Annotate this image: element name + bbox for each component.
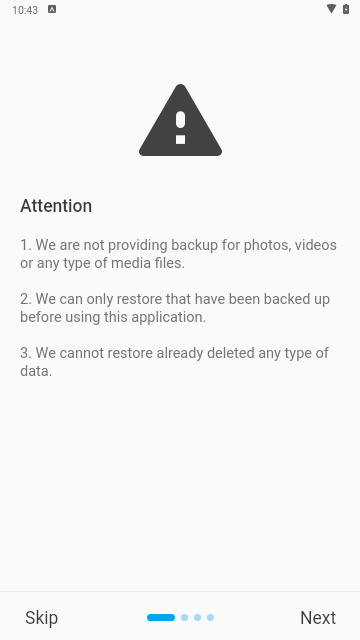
button[interactable]: Skip	[0, 597, 84, 640]
staticText: Next	[300, 608, 337, 629]
staticText: 3. We cannot restore already deleted any…	[20, 345, 340, 380]
staticText: Skip	[25, 608, 59, 629]
staticText: 1. We are not providing backup for photo…	[20, 237, 340, 272]
other: Attention warning	[139, 84, 222, 156]
staticText: Attention	[20, 196, 93, 217]
button[interactable]: Next	[277, 597, 360, 640]
staticText: 10:43	[12, 4, 39, 16]
staticText: 2. We can only restore that have been ba…	[20, 291, 340, 326]
